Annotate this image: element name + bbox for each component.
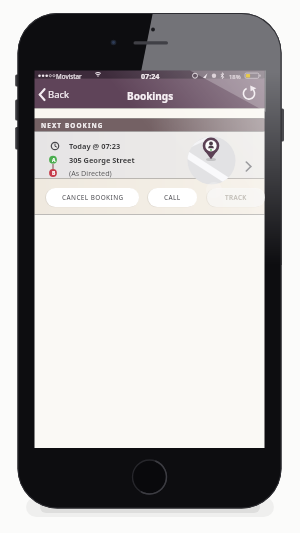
button[interactable]: TRACK: [207, 188, 265, 207]
staticText: B: [52, 170, 56, 177]
staticText: 07:24: [141, 71, 160, 81]
staticText: A: [52, 157, 56, 164]
button[interactable]: CALL: [148, 188, 197, 207]
button[interactable]: Back: [36, 83, 80, 105]
staticText: Movistar: [56, 72, 82, 81]
button[interactable]: [236, 81, 262, 106]
staticText: 305 George Street: [69, 155, 135, 165]
staticText: Back: [48, 88, 70, 101]
staticText: Bookings: [127, 89, 174, 103]
staticText: (As Directed): [69, 168, 112, 178]
staticText: CALL: [164, 193, 181, 202]
staticText: Today @ 07:23: [69, 141, 121, 151]
button[interactable]: CANCEL BOOKING: [46, 188, 139, 207]
staticText: TRACK: [225, 193, 247, 202]
button[interactable]: Today @ 07:23: [36, 132, 264, 184]
staticText: 18%: [229, 73, 241, 81]
staticText: NEXT BOOKING: [41, 121, 104, 130]
staticText: CANCEL BOOKING: [62, 193, 124, 202]
